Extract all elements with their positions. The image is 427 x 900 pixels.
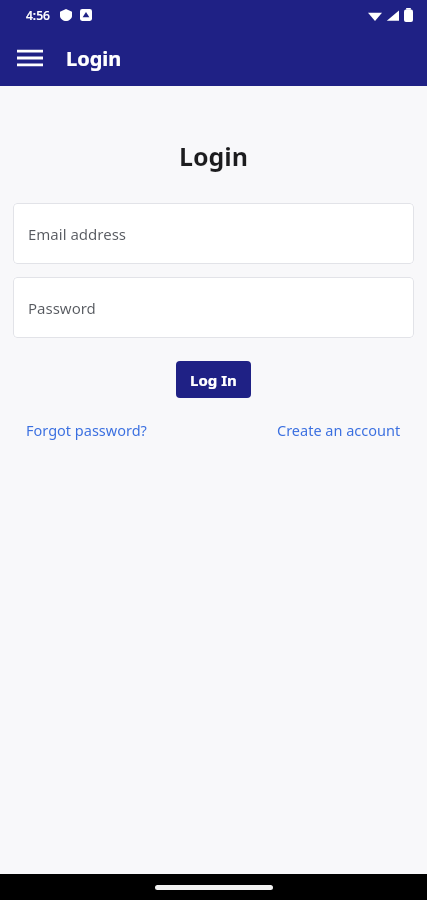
staticText: Login	[66, 45, 122, 72]
staticText: Create an account	[277, 420, 401, 440]
button[interactable]: Log In	[176, 361, 251, 398]
staticText: Login	[0, 139, 427, 173]
button[interactable]: Create an account	[277, 420, 401, 440]
button[interactable]: Forgot password?	[26, 420, 147, 440]
button[interactable]: Email address	[13, 203, 414, 264]
button[interactable]: Open navigation menu	[8, 36, 52, 80]
staticText: Log In	[190, 370, 237, 390]
staticText: Email address	[28, 224, 127, 244]
staticText: Password	[28, 298, 96, 318]
staticText: Forgot password?	[26, 420, 147, 440]
staticText: 4:56	[26, 7, 50, 23]
button[interactable]: Password	[13, 277, 414, 338]
